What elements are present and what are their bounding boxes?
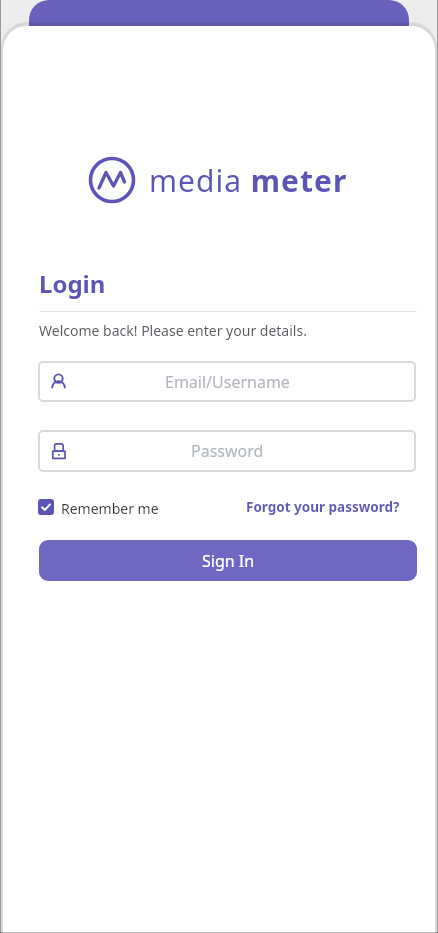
staticText: Remember me xyxy=(61,499,159,518)
staticText: Email/Username xyxy=(165,371,290,393)
button[interactable]: Password xyxy=(38,430,416,472)
staticText: Login xyxy=(39,267,106,300)
staticText: Forgot your password? xyxy=(246,498,400,516)
button[interactable]: Email/Username xyxy=(38,361,416,402)
staticText: Password xyxy=(191,440,264,462)
staticText: Welcome back! Please enter your details. xyxy=(39,321,307,340)
button[interactable]: Forgot your password? xyxy=(218,496,400,518)
button[interactable]: Sign In xyxy=(39,540,417,581)
staticText: Sign In xyxy=(202,550,255,572)
button[interactable]: Remember me xyxy=(38,498,188,518)
staticText: media meter xyxy=(149,160,348,201)
